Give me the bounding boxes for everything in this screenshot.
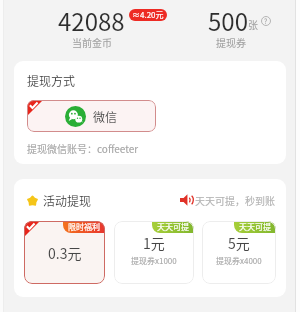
staticText: 1元: [143, 233, 165, 253]
button[interactable]: 天天可提: [114, 221, 194, 284]
staticText: 42088: [58, 3, 125, 38]
staticText: 5元: [228, 233, 250, 253]
staticText: 提现券: [216, 35, 246, 49]
staticText: ?: [264, 16, 268, 26]
staticText: ≈4.20元: [132, 9, 164, 21]
staticText: 天天可提，秒到账: [195, 193, 275, 207]
staticText: 500: [208, 3, 248, 38]
staticText: 天天可提: [239, 221, 271, 233]
button[interactable]: 提现券说明: [261, 16, 271, 26]
button[interactable]: 限时福利: [24, 221, 105, 284]
staticText: 提现券x4000: [216, 255, 262, 267]
staticText: 提现微信账号：coffeeter: [27, 141, 139, 155]
staticText: 微信: [93, 108, 118, 125]
staticText: 限时福利: [68, 221, 100, 233]
staticText: 当前金币: [72, 35, 112, 49]
button[interactable]: 微信: [27, 100, 156, 132]
staticText: 活动提现: [43, 192, 92, 209]
staticText: 张: [248, 17, 258, 31]
staticText: 提现券x1000: [131, 255, 177, 267]
staticText: 提现方式: [27, 72, 76, 89]
button[interactable]: 天天可提: [202, 221, 276, 284]
staticText: 天天可提: [157, 221, 189, 233]
staticText: 0.3元: [48, 243, 82, 263]
